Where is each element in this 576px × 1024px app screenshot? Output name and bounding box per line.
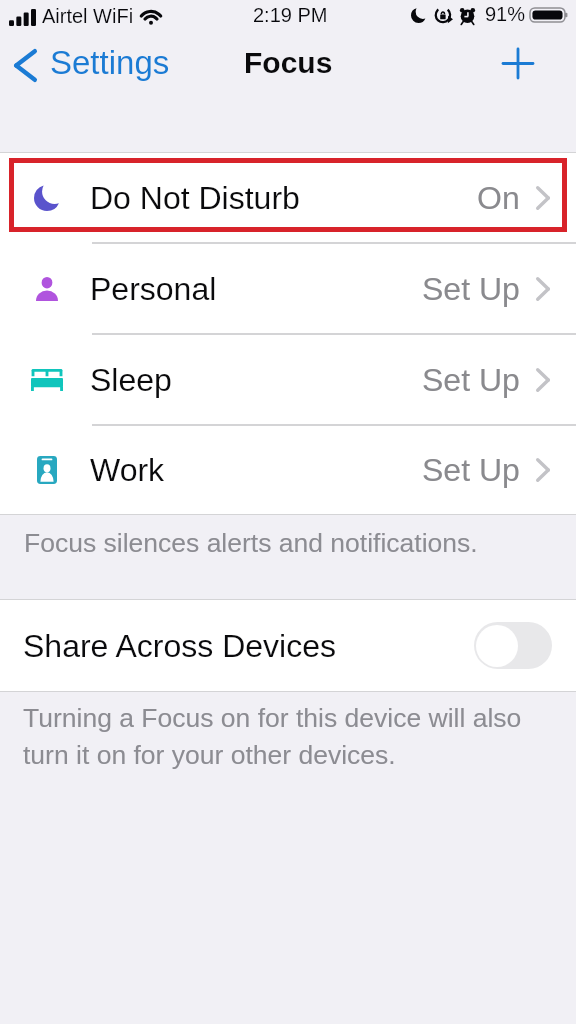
staticText: Airtel WiFi (42, 5, 134, 27)
staticText: Personal (90, 271, 217, 307)
staticText: On (477, 180, 520, 216)
staticText: Set Up (422, 271, 520, 307)
staticText: Focus silences alerts and notifications. (24, 528, 478, 558)
button[interactable]: Sleep (0, 335, 576, 424)
staticText: Set Up (422, 452, 520, 488)
button[interactable]: Personal (0, 244, 576, 333)
staticText: Turning a Focus on for this device will … (23, 703, 522, 769)
button[interactable]: Add Focus (495, 40, 541, 86)
button[interactable]: Do Not Disturb (0, 153, 576, 242)
staticText: Do Not Disturb (90, 180, 300, 216)
button[interactable]: Settings (0, 38, 182, 87)
staticText: Share Across Devices (23, 628, 337, 664)
staticText: Focus (244, 46, 333, 80)
button[interactable]: Share Across Devices toggle (474, 622, 552, 669)
button[interactable]: Work (0, 426, 576, 514)
staticText: Settings (50, 44, 170, 81)
staticText: 2:19 PM (253, 4, 328, 26)
staticText: 91% (485, 3, 526, 25)
staticText: Set Up (422, 362, 520, 398)
staticText: Work (90, 452, 165, 488)
staticText: Sleep (90, 362, 172, 398)
button[interactable]: Share Across Devices (0, 600, 576, 691)
